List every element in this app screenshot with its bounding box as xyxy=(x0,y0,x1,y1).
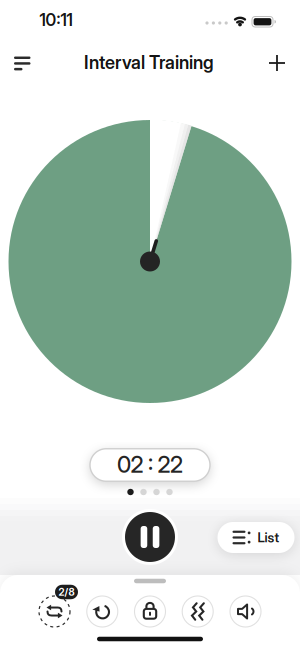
button[interactable]: Add xyxy=(0,0,300,650)
button[interactable]: Repeat 2 of 8 xyxy=(0,0,300,650)
staticText: List xyxy=(257,529,279,545)
button[interactable]: Lock xyxy=(0,0,300,650)
button[interactable]: Vibration xyxy=(0,0,300,650)
button[interactable]: Pause xyxy=(122,509,178,565)
button[interactable]: List xyxy=(217,522,294,553)
staticText: Interval Training xyxy=(84,52,214,73)
button[interactable]: Reset xyxy=(0,0,300,650)
staticText: 10:11 xyxy=(39,10,72,30)
staticText: 02 : 22 xyxy=(117,451,183,478)
button[interactable]: Sound xyxy=(0,0,300,650)
button[interactable]: Menu xyxy=(0,0,300,650)
staticText: 2/8 xyxy=(58,586,74,598)
